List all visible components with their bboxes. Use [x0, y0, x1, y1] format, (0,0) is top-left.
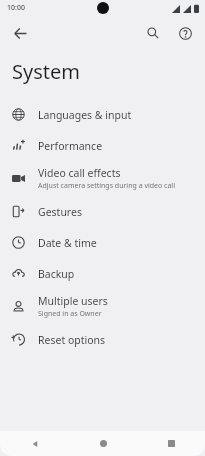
- button[interactable]: Gestures: [0, 196, 205, 227]
- staticText: Performance: [38, 139, 103, 153]
- staticText: Backup: [38, 267, 75, 281]
- button[interactable]: Recent apps: [137, 431, 205, 456]
- staticText: Reset options: [38, 333, 106, 347]
- button[interactable]: Multiple users: [0, 289, 205, 324]
- button[interactable]: Back: [4, 17, 36, 49]
- button[interactable]: Languages & input: [0, 99, 205, 130]
- staticText: Video call effects: [38, 166, 121, 180]
- staticText: System: [12, 58, 80, 85]
- staticText: Languages & input: [38, 108, 132, 122]
- button[interactable]: Help: [170, 18, 200, 48]
- button[interactable]: Video call effects: [0, 161, 205, 196]
- staticText: Date & time: [38, 236, 97, 250]
- button[interactable]: Reset options: [0, 324, 205, 355]
- staticText: Gestures: [38, 205, 82, 219]
- button[interactable]: Search: [138, 18, 168, 48]
- button[interactable]: Back: [0, 431, 69, 456]
- staticText: Adjust camera settings during a video ca…: [38, 181, 175, 191]
- button[interactable]: Home: [69, 431, 137, 456]
- button[interactable]: Date & time: [0, 227, 205, 258]
- button[interactable]: Backup: [0, 258, 205, 289]
- staticText: Signed in as Owner: [38, 309, 102, 319]
- button[interactable]: Performance: [0, 130, 205, 161]
- staticText: 10:00: [7, 3, 25, 13]
- staticText: Multiple users: [38, 294, 108, 308]
